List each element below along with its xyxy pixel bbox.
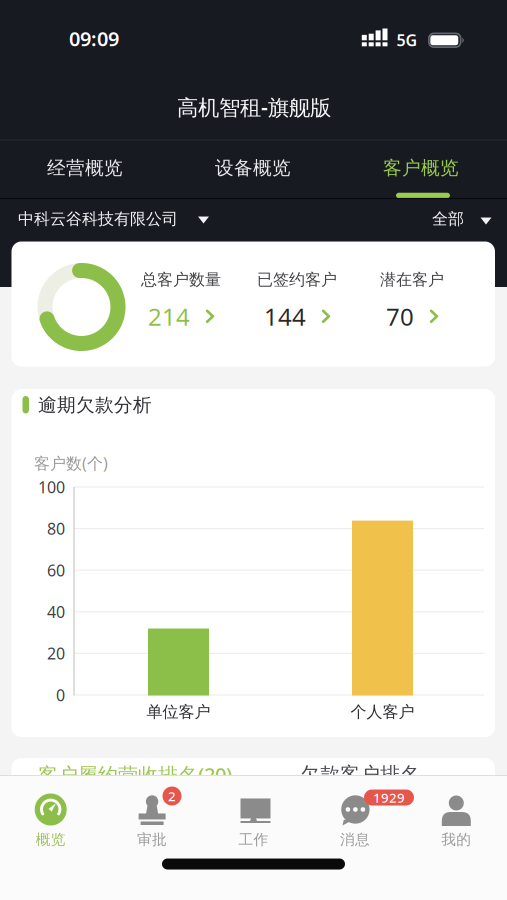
- staticText: 60: [47, 560, 65, 581]
- staticText: 潜在客户: [380, 270, 444, 289]
- staticText: 20: [47, 643, 65, 664]
- staticText: 客户数(个): [34, 452, 108, 474]
- button[interactable]: 消息: [305, 789, 405, 851]
- staticText: 高机智租-旗舰版: [177, 93, 331, 121]
- button[interactable]: 概览: [1, 789, 101, 851]
- staticText: 2: [168, 787, 176, 805]
- button[interactable]: 已签约客户: [241, 255, 353, 347]
- button[interactable]: 中科云谷科技有限公司: [18, 199, 218, 239]
- button[interactable]: 我的: [406, 789, 506, 851]
- staticText: 个人客户: [350, 702, 414, 722]
- staticText: 100: [38, 476, 65, 498]
- staticText: 审批: [137, 830, 167, 848]
- staticText: 70: [386, 300, 414, 332]
- button[interactable]: 潜在客户: [356, 255, 468, 347]
- staticText: 设备概览: [215, 156, 291, 179]
- staticText: 概览: [36, 830, 66, 848]
- staticText: 工作: [238, 830, 268, 848]
- staticText: 144: [264, 300, 306, 332]
- staticText: 80: [47, 518, 65, 539]
- staticText: 全部: [432, 209, 464, 229]
- button[interactable]: 审批: [102, 789, 202, 851]
- button[interactable]: 设备概览: [169, 139, 337, 197]
- staticText: 我的: [441, 830, 471, 848]
- staticText: 40: [47, 601, 65, 622]
- button[interactable]: 客户概览: [337, 139, 505, 197]
- staticText: 1929: [373, 789, 405, 806]
- staticText: 客户概览: [383, 156, 459, 179]
- staticText: 0: [56, 684, 65, 706]
- staticText: 单位客户: [146, 702, 210, 722]
- button[interactable]: 经营概览: [1, 139, 169, 197]
- staticText: 客户履约营收排名(20): [38, 761, 232, 788]
- staticText: 逾期欠款分析: [38, 393, 152, 416]
- button[interactable]: 总客户数量: [125, 255, 237, 347]
- button[interactable]: 全部: [432, 199, 504, 239]
- staticText: 中科云谷科技有限公司: [18, 209, 178, 229]
- staticText: 已签约客户: [257, 270, 337, 289]
- staticText: 09:09: [69, 25, 119, 52]
- staticText: 总客户数量: [141, 270, 221, 289]
- button[interactable]: 工作: [203, 789, 303, 851]
- button[interactable]: 客户履约营收排名(20): [38, 759, 248, 789]
- staticText: 消息: [340, 830, 370, 848]
- staticText: 欠款客户排名: [300, 762, 420, 787]
- staticText: 经营概览: [47, 156, 123, 179]
- staticText: 5G: [396, 29, 417, 51]
- button[interactable]: 欠款客户排名: [300, 759, 440, 789]
- staticText: 214: [148, 300, 190, 332]
